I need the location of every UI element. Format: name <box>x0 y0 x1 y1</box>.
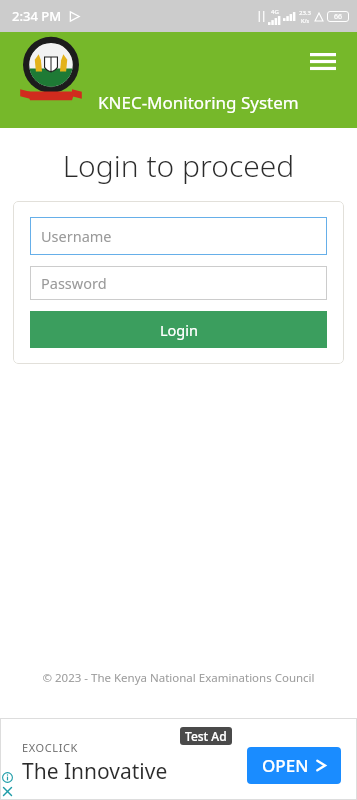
button[interactable]: Advertisement: EXOCLICK The Innovative <box>0 718 357 800</box>
staticText: 4G <box>271 8 279 16</box>
staticText: Test Ad <box>185 728 227 744</box>
staticText: Password <box>41 273 107 293</box>
staticText: K/s <box>301 17 310 24</box>
staticText: 66 <box>334 12 343 22</box>
button[interactable]: Login <box>30 311 327 348</box>
button[interactable]: Open navigation menu <box>301 40 345 84</box>
staticText: Login <box>160 320 198 340</box>
staticText: Username <box>41 226 112 246</box>
staticText: © 2023 - The Kenya National Examinations… <box>0 670 357 686</box>
staticText: 2:34 PM <box>12 7 62 25</box>
staticText: OPEN <box>262 754 309 777</box>
button[interactable]: Username <box>30 217 327 255</box>
staticText: EXOCLICK <box>22 740 78 755</box>
button[interactable]: OPEN <box>247 747 341 784</box>
staticText: 23.3 <box>299 9 311 17</box>
staticText: Login to proceed <box>0 145 357 186</box>
staticText: The Innovative <box>22 757 168 786</box>
staticText: KNEC-Monitoring System <box>98 91 299 114</box>
button[interactable]: Password <box>30 266 327 300</box>
